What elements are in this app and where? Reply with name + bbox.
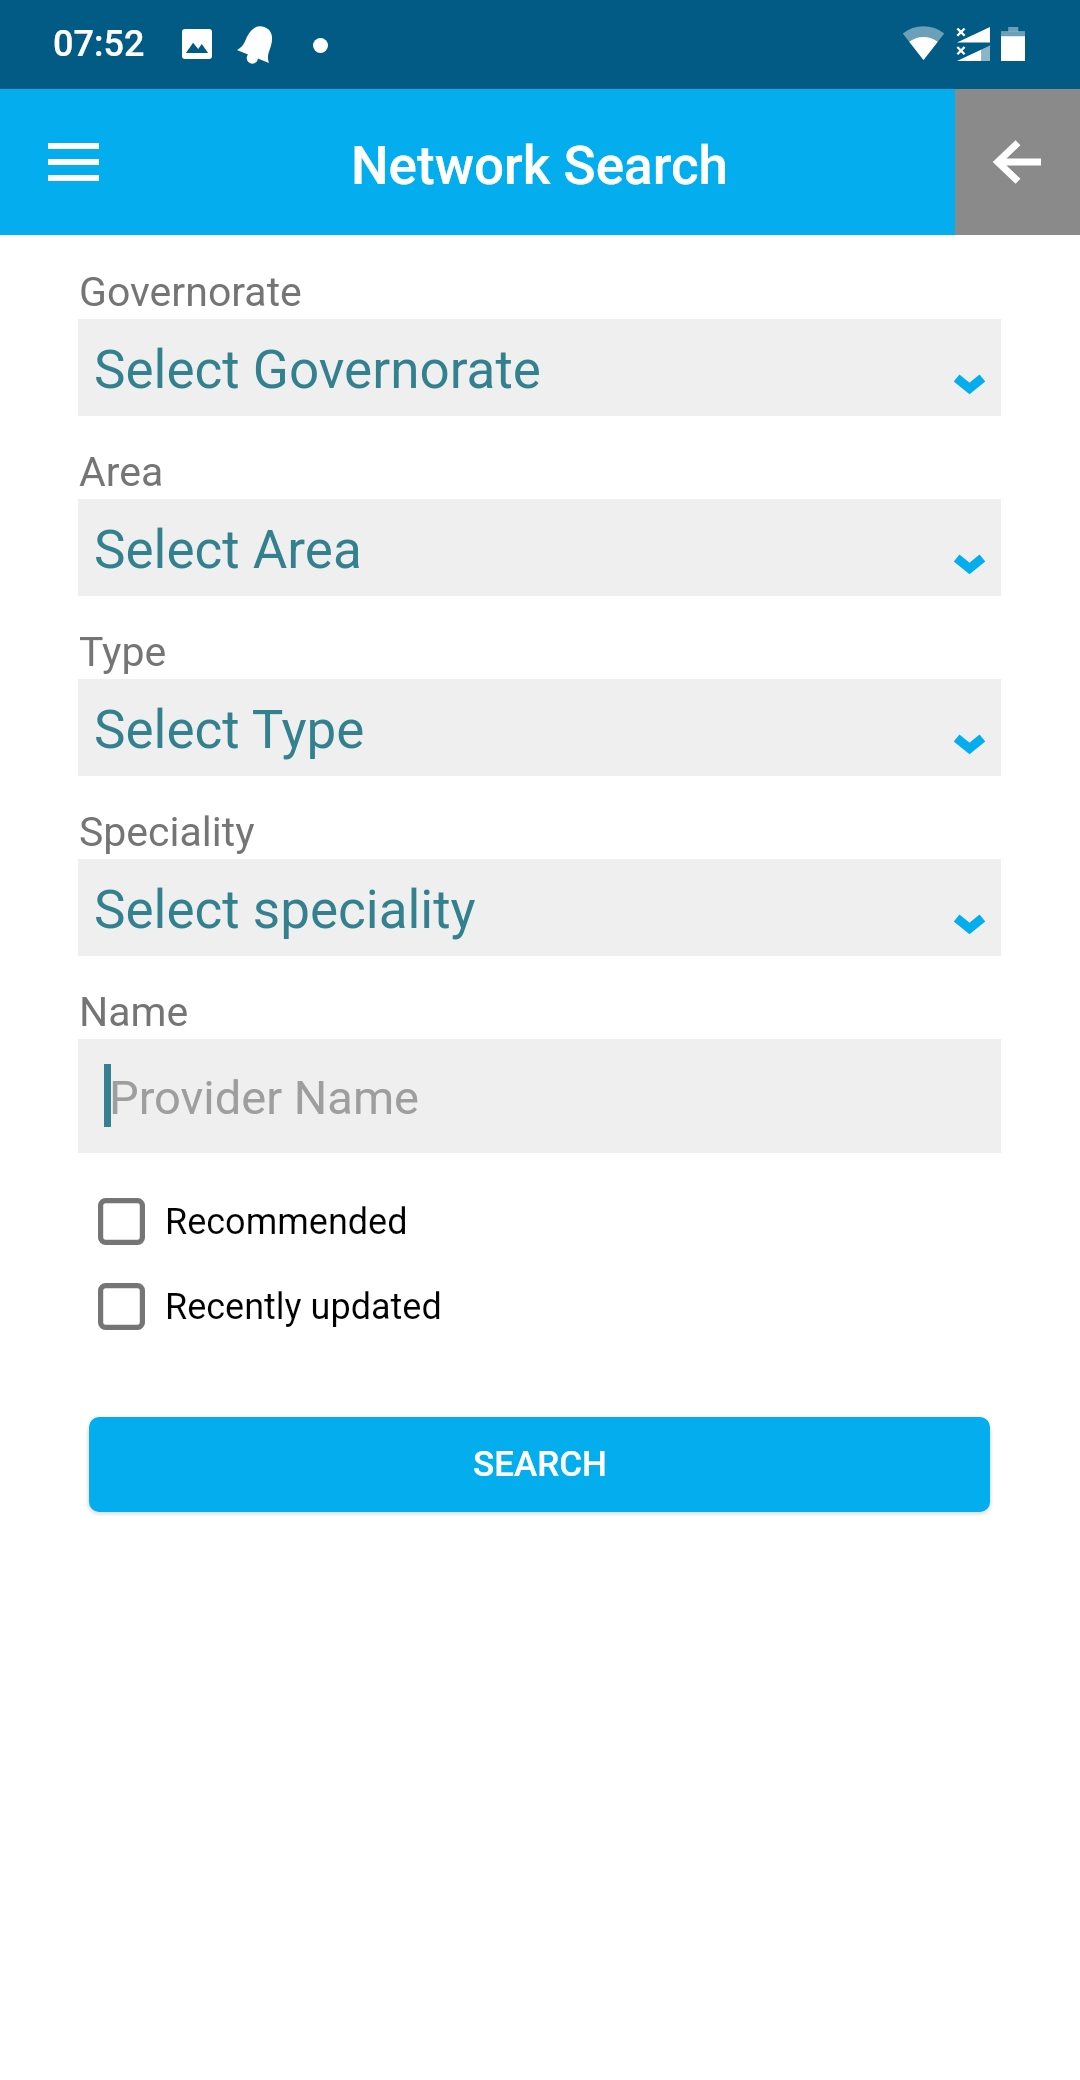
staticText: Speciality <box>79 808 255 856</box>
staticText: Area <box>79 448 164 496</box>
staticText: Select speciality <box>94 879 476 941</box>
staticText: Recommended <box>165 1201 408 1243</box>
staticText: Select Area <box>94 519 362 581</box>
staticText: Provider Name <box>109 1070 420 1125</box>
staticText: 07:52 <box>53 23 145 65</box>
staticText: Select Governorate <box>94 339 541 401</box>
staticText: SEARCH <box>473 1444 607 1485</box>
staticText: Recently updated <box>165 1286 442 1328</box>
staticText: Name <box>79 988 189 1036</box>
button[interactable]: Provider Name <box>78 1039 1001 1153</box>
button[interactable]: Back <box>955 89 1080 235</box>
staticText: Type <box>79 628 167 676</box>
button[interactable]: Open navigation menu <box>20 109 126 215</box>
button[interactable]: Select Type <box>78 679 1001 776</box>
staticText: Governorate <box>79 268 302 316</box>
button[interactable]: Recommended <box>0 1184 1080 1259</box>
button[interactable]: Select speciality <box>78 859 1001 956</box>
button[interactable]: Select Governorate <box>78 319 1001 416</box>
staticText: Network Search <box>351 135 729 197</box>
staticText: Select Type <box>94 699 365 761</box>
button[interactable]: Select Area <box>78 499 1001 596</box>
button[interactable]: SEARCH <box>89 1417 990 1512</box>
button[interactable]: Recently updated <box>0 1269 1080 1344</box>
